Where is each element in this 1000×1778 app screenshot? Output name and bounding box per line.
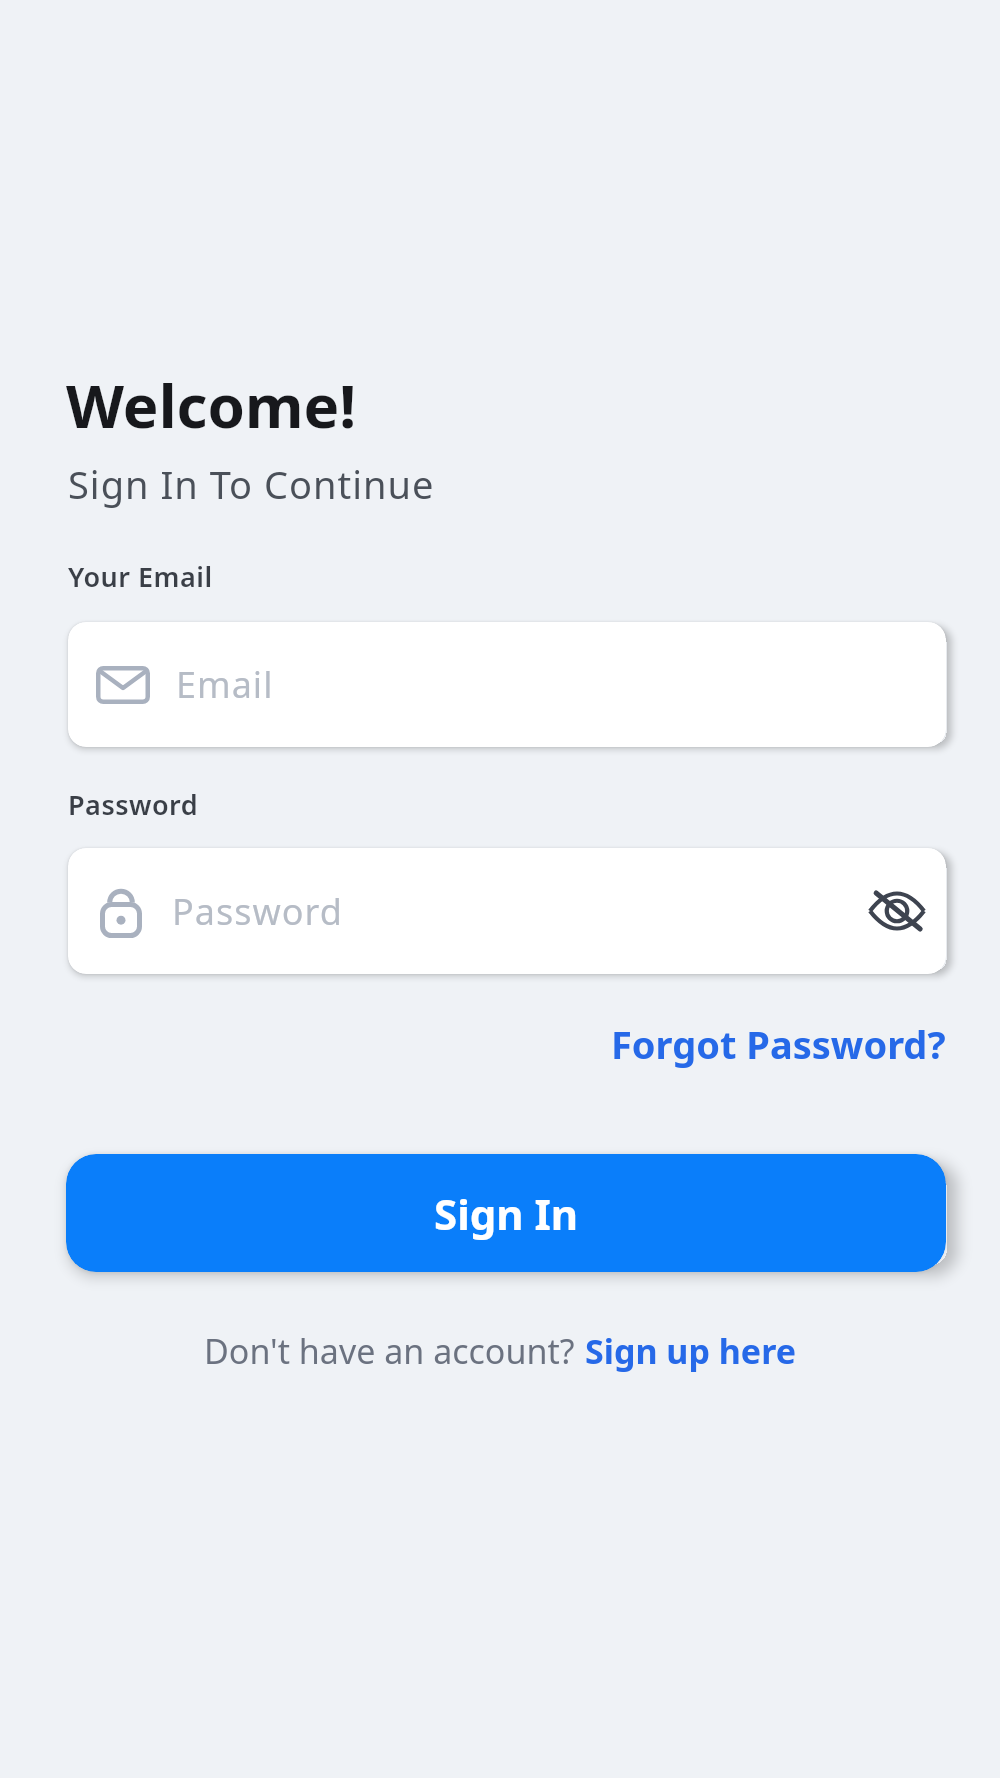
staticText: Sign In	[434, 1185, 579, 1242]
staticText: Password	[68, 786, 199, 823]
staticText: Password	[172, 887, 343, 936]
staticText: Your Email	[68, 558, 213, 595]
button[interactable]	[867, 881, 927, 941]
button[interactable]: Sign In	[66, 1154, 946, 1272]
button[interactable]: Sign up here	[585, 1328, 796, 1374]
button[interactable]: Password	[68, 848, 946, 974]
staticText: Sign In To Continue	[68, 458, 435, 510]
staticText: Don't have an account?	[204, 1328, 575, 1374]
button[interactable]: Forgot Password?	[611, 1018, 946, 1070]
staticText: Email	[176, 660, 274, 709]
staticText: Welcome!	[66, 364, 357, 446]
button[interactable]: Email	[68, 622, 946, 747]
